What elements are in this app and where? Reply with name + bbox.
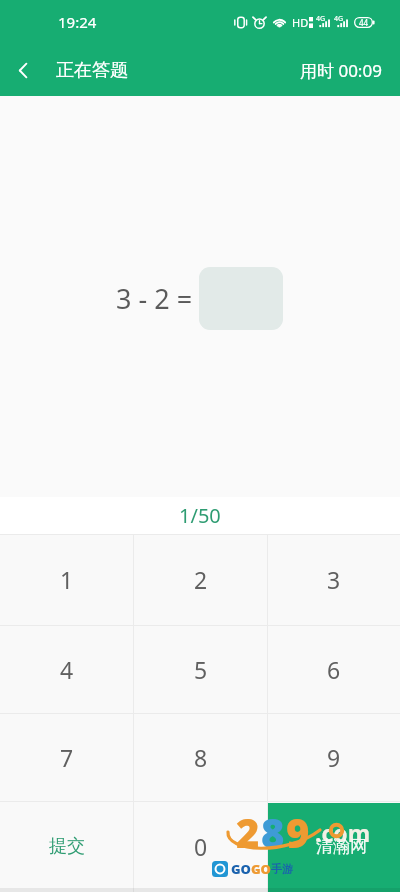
button[interactable]: Back xyxy=(0,47,46,93)
staticText: 清瀚网 xyxy=(316,836,367,857)
button[interactable]: 6 xyxy=(268,625,400,713)
button[interactable]: 2 xyxy=(134,534,267,625)
staticText: 手游 xyxy=(271,862,293,876)
staticText: 19:24 xyxy=(58,12,97,32)
staticText: GO xyxy=(251,860,271,878)
staticText: 4G xyxy=(316,14,326,24)
button[interactable]: 0 xyxy=(134,801,267,892)
staticText: 4G xyxy=(334,14,344,24)
staticText: 用时 00:09 xyxy=(300,59,382,82)
button[interactable]: 3 xyxy=(268,534,400,625)
staticText: 8 xyxy=(194,742,208,773)
staticText: 44 xyxy=(359,17,369,28)
button[interactable]: 9 xyxy=(268,713,400,801)
staticText: 5 xyxy=(194,654,208,685)
staticText: 0 xyxy=(194,831,208,862)
staticText: 7 xyxy=(60,742,74,773)
button[interactable]: 提交 xyxy=(0,801,133,892)
staticText: .com xyxy=(315,817,371,848)
staticText: 4 xyxy=(60,654,74,685)
staticText: 2 xyxy=(194,564,208,595)
staticText: 1 xyxy=(60,564,74,595)
staticText: 3 - 2 = xyxy=(116,280,193,317)
staticText: HD xyxy=(292,15,309,30)
staticText: 9 xyxy=(286,805,311,859)
button[interactable]: 8 xyxy=(134,713,267,801)
staticText: 9 xyxy=(327,742,341,773)
staticText: 6 xyxy=(327,654,341,685)
button[interactable]: 5 xyxy=(134,625,267,713)
button[interactable] xyxy=(268,801,400,892)
staticText: 正在答题 xyxy=(56,59,128,82)
button[interactable]: 1 xyxy=(0,534,133,625)
button[interactable] xyxy=(199,267,283,330)
button[interactable]: 4 xyxy=(0,625,133,713)
button[interactable]: 7 xyxy=(0,713,133,801)
staticText: 8 xyxy=(261,805,286,859)
staticText: 1/50 xyxy=(179,502,221,529)
staticText: 3 xyxy=(327,564,341,595)
staticText: GO xyxy=(231,860,251,878)
staticText: 提交 xyxy=(49,835,85,858)
staticText: 2 xyxy=(236,805,261,859)
